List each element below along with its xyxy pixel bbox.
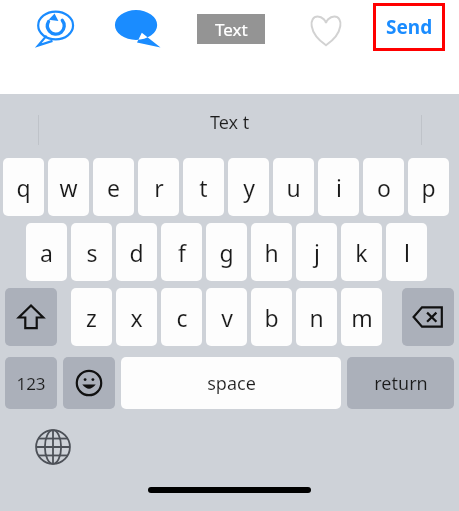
staticText: n bbox=[309, 302, 324, 333]
button[interactable]: w bbox=[48, 158, 89, 216]
button[interactable]: space bbox=[121, 357, 341, 409]
button[interactable]: u bbox=[273, 158, 314, 216]
button[interactable]: Backspace bbox=[402, 288, 454, 346]
button[interactable]: f bbox=[161, 223, 202, 281]
button[interactable]: Reply bbox=[30, 6, 80, 50]
button[interactable]: return bbox=[347, 357, 454, 409]
staticText: k bbox=[355, 237, 368, 268]
button[interactable]: m bbox=[341, 288, 382, 346]
staticText: t bbox=[199, 172, 208, 203]
button[interactable]: d bbox=[116, 223, 157, 281]
staticText: return bbox=[374, 371, 428, 396]
button[interactable]: r bbox=[138, 158, 179, 216]
staticText: v bbox=[221, 302, 233, 333]
button[interactable]: s bbox=[71, 223, 112, 281]
button[interactable]: x bbox=[116, 288, 157, 346]
button[interactable]: Send bbox=[373, 3, 445, 51]
button[interactable]: k bbox=[341, 223, 382, 281]
button[interactable]: z bbox=[71, 288, 112, 346]
staticText: w bbox=[59, 172, 78, 203]
button[interactable] bbox=[5, 288, 57, 346]
button[interactable]: Tex t bbox=[0, 94, 459, 150]
button[interactable]: n bbox=[296, 288, 337, 346]
staticText: a bbox=[40, 237, 53, 268]
button[interactable]: o bbox=[363, 158, 404, 216]
button[interactable]: t bbox=[183, 158, 224, 216]
staticText: b bbox=[264, 302, 279, 333]
staticText: Send bbox=[386, 14, 433, 40]
button[interactable]: a bbox=[26, 223, 67, 281]
staticText: q bbox=[16, 172, 31, 203]
staticText: l bbox=[404, 237, 410, 268]
staticText: Text bbox=[215, 18, 248, 41]
button[interactable]: Emoji bbox=[63, 357, 115, 409]
staticText: y bbox=[243, 172, 255, 203]
staticText: p bbox=[421, 172, 436, 203]
button[interactable]: j bbox=[296, 223, 337, 281]
staticText: f bbox=[178, 237, 186, 268]
button[interactable]: p bbox=[408, 158, 449, 216]
button[interactable]: Text bbox=[197, 14, 265, 44]
button[interactable]: b bbox=[251, 288, 292, 346]
staticText: d bbox=[129, 237, 144, 268]
button[interactable]: i bbox=[318, 158, 359, 216]
staticText: e bbox=[107, 172, 120, 203]
button[interactable]: e bbox=[93, 158, 134, 216]
staticText: o bbox=[377, 172, 391, 203]
staticText: j bbox=[314, 237, 320, 268]
button[interactable]: g bbox=[206, 223, 247, 281]
staticText: u bbox=[286, 172, 301, 203]
staticText: x bbox=[130, 302, 143, 333]
button[interactable]: v bbox=[206, 288, 247, 346]
button[interactable]: Like bbox=[303, 8, 349, 52]
staticText: s bbox=[86, 237, 98, 268]
staticText: i bbox=[336, 172, 342, 203]
staticText: c bbox=[176, 302, 188, 333]
staticText: g bbox=[219, 237, 234, 268]
button[interactable]: l bbox=[386, 223, 427, 281]
staticText: space bbox=[207, 371, 256, 396]
button[interactable]: Change keyboard language bbox=[30, 424, 76, 470]
staticText: 123 bbox=[16, 372, 46, 395]
staticText: h bbox=[264, 237, 279, 268]
button[interactable]: c bbox=[161, 288, 202, 346]
staticText: r bbox=[154, 172, 164, 203]
button[interactable]: Message bubble bbox=[110, 6, 164, 50]
button[interactable]: h bbox=[251, 223, 292, 281]
button[interactable]: q bbox=[3, 158, 44, 216]
button[interactable]: 123 bbox=[5, 357, 57, 409]
staticText: z bbox=[86, 302, 97, 333]
button[interactable]: y bbox=[228, 158, 269, 216]
staticText: Tex t bbox=[210, 110, 250, 135]
staticText: m bbox=[351, 302, 373, 333]
